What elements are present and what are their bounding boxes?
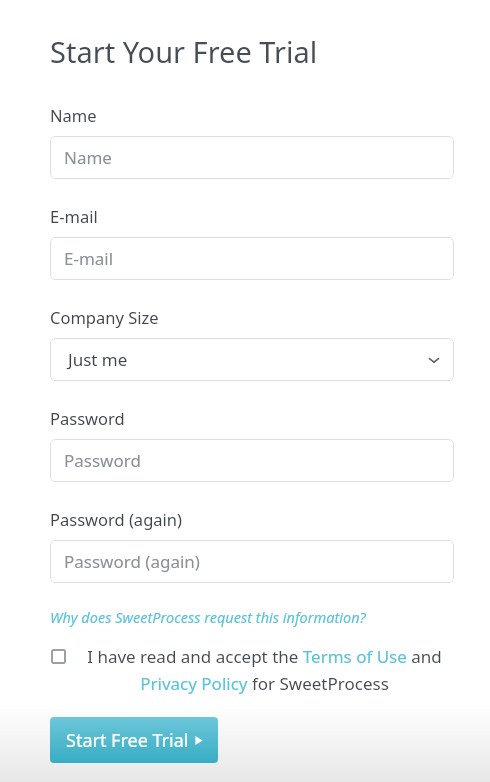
staticText: Name	[50, 104, 97, 126]
staticText: Start Your Free Trial	[50, 32, 318, 71]
staticText: Start Free Trial	[66, 728, 189, 753]
button[interactable]: Start Free Trial	[50, 717, 218, 763]
staticText: E-mail	[64, 247, 114, 270]
other: Accept terms checkbox	[51, 649, 66, 664]
staticText: I have read and accept the Terms of Use …	[75, 645, 454, 695]
button[interactable]: E-mail	[50, 237, 454, 280]
staticText: Company Size	[50, 306, 159, 328]
button[interactable]: Password	[50, 439, 454, 482]
other: Open dropdown	[428, 354, 440, 366]
staticText: Name	[64, 146, 112, 169]
button[interactable]: Just me	[50, 338, 454, 381]
button[interactable]: Name	[50, 136, 454, 179]
staticText: E-mail	[50, 205, 98, 227]
staticText: Password	[64, 449, 141, 472]
staticText: Password	[50, 407, 125, 429]
staticText: Password (again)	[64, 550, 200, 573]
button[interactable]: Why does SweetProcess request this infor…	[50, 607, 366, 627]
staticText: Just me	[68, 348, 128, 371]
staticText: Password (again)	[50, 508, 182, 530]
button[interactable]: Password (again)	[50, 540, 454, 583]
button[interactable]: Accept terms checkbox	[50, 645, 454, 695]
staticText: Why does SweetProcess request this infor…	[50, 607, 366, 627]
